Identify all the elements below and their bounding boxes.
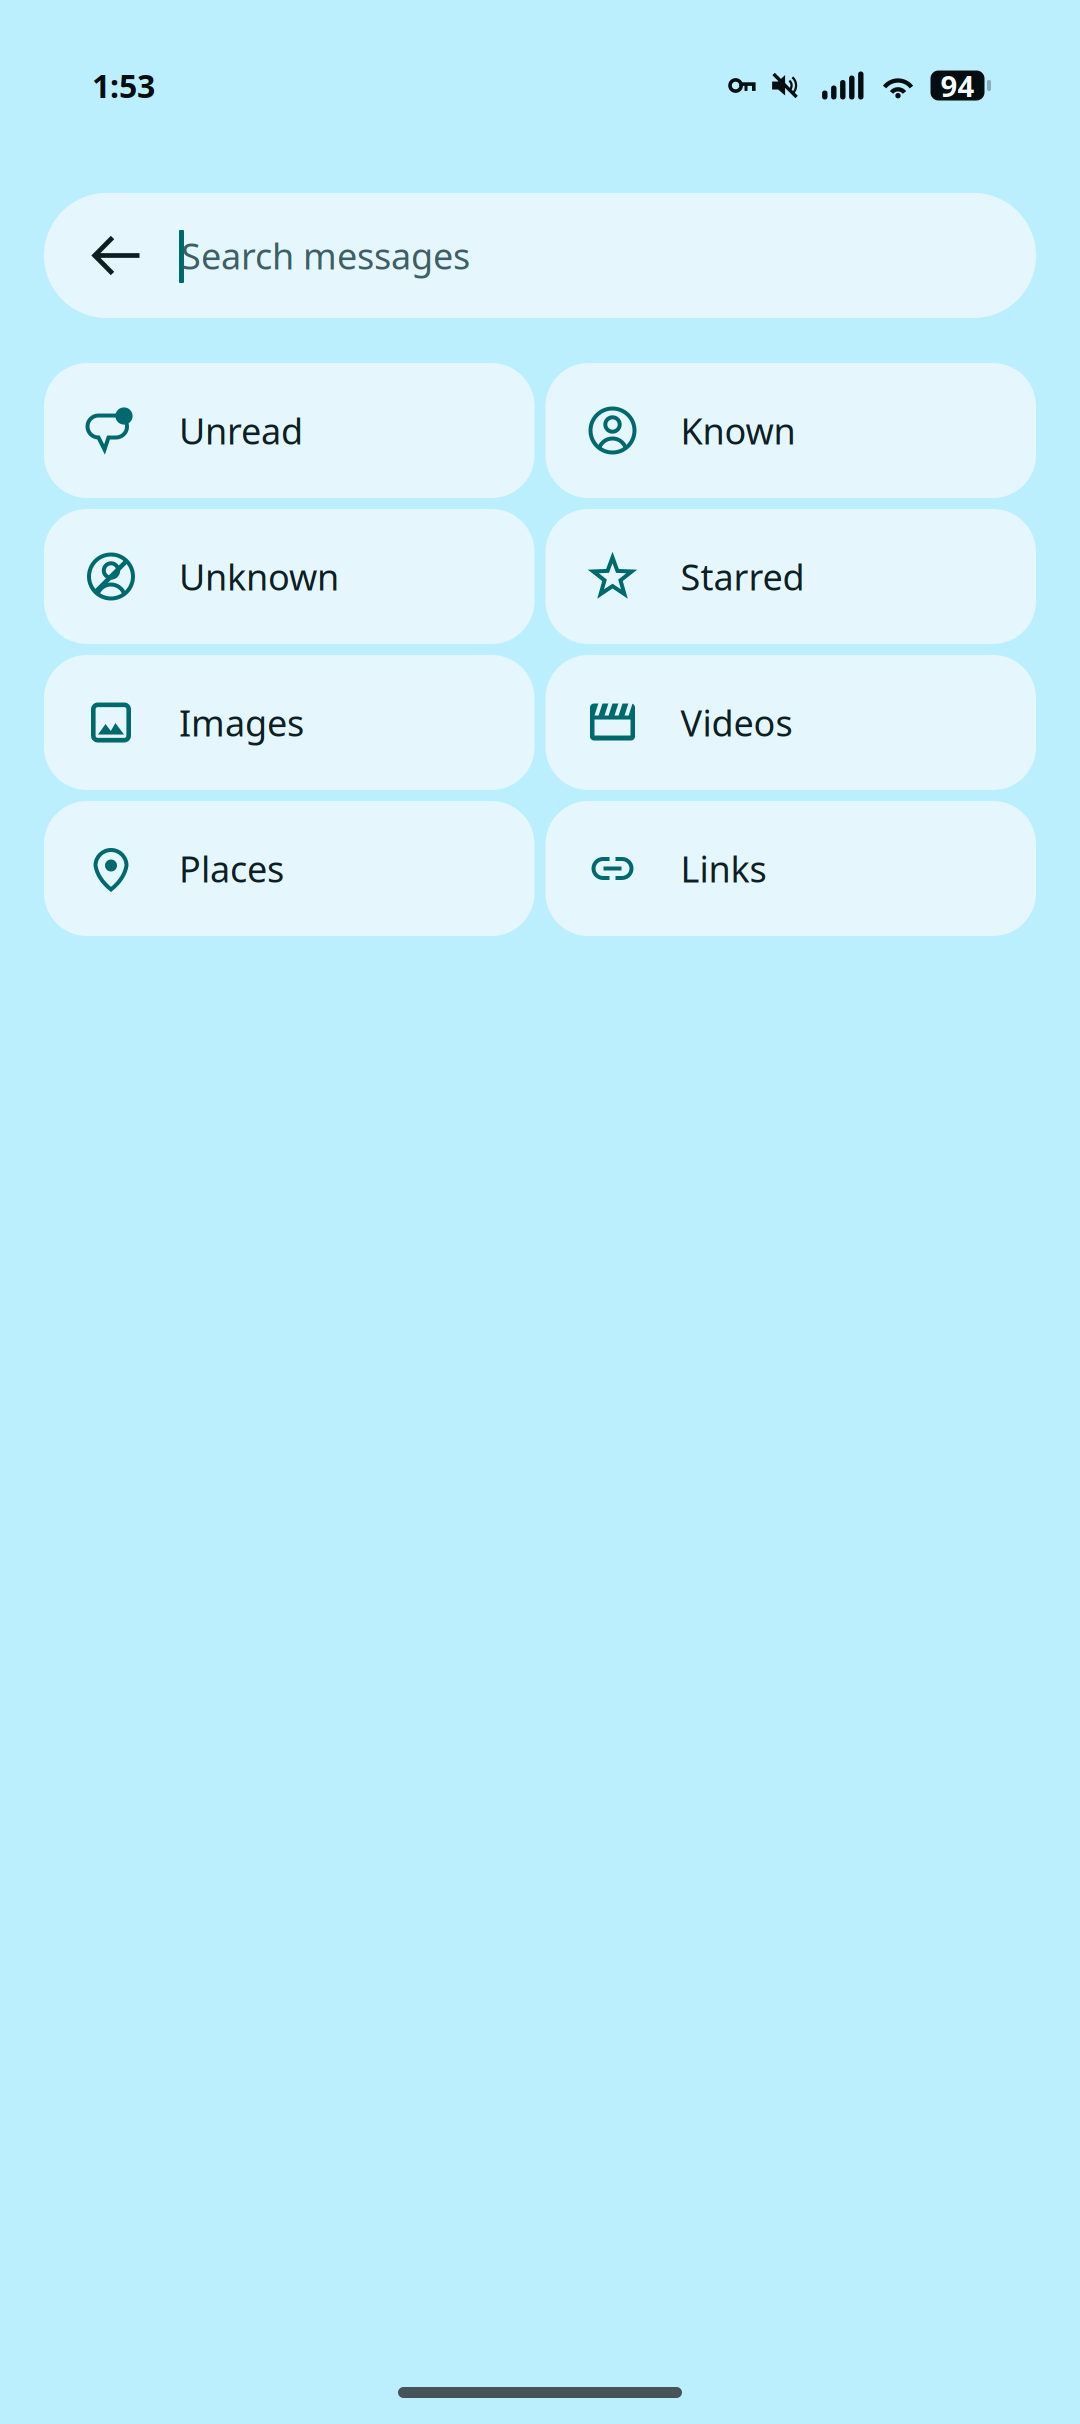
button[interactable]: Unread	[44, 363, 534, 498]
button[interactable]: Known	[545, 363, 1036, 498]
button[interactable]: Videos	[545, 655, 1036, 790]
staticText: Known	[680, 407, 795, 454]
button[interactable]: Starred	[545, 509, 1036, 644]
button[interactable]: Links	[545, 801, 1036, 936]
button[interactable]: Places	[44, 801, 534, 936]
staticText: 1:53	[92, 64, 155, 107]
staticText: Places	[179, 845, 284, 892]
staticText: 94	[940, 66, 974, 105]
staticText: Images	[179, 699, 304, 746]
staticText: Links	[680, 845, 766, 892]
staticText: Search messages	[181, 232, 470, 279]
staticText: Unknown	[179, 553, 339, 600]
button[interactable]: Images	[44, 655, 534, 790]
staticText: Unread	[179, 407, 303, 454]
button[interactable]: Unknown	[44, 509, 534, 644]
staticText: Starred	[680, 553, 804, 600]
button[interactable]: Back	[44, 193, 179, 318]
staticText: Videos	[680, 699, 792, 746]
